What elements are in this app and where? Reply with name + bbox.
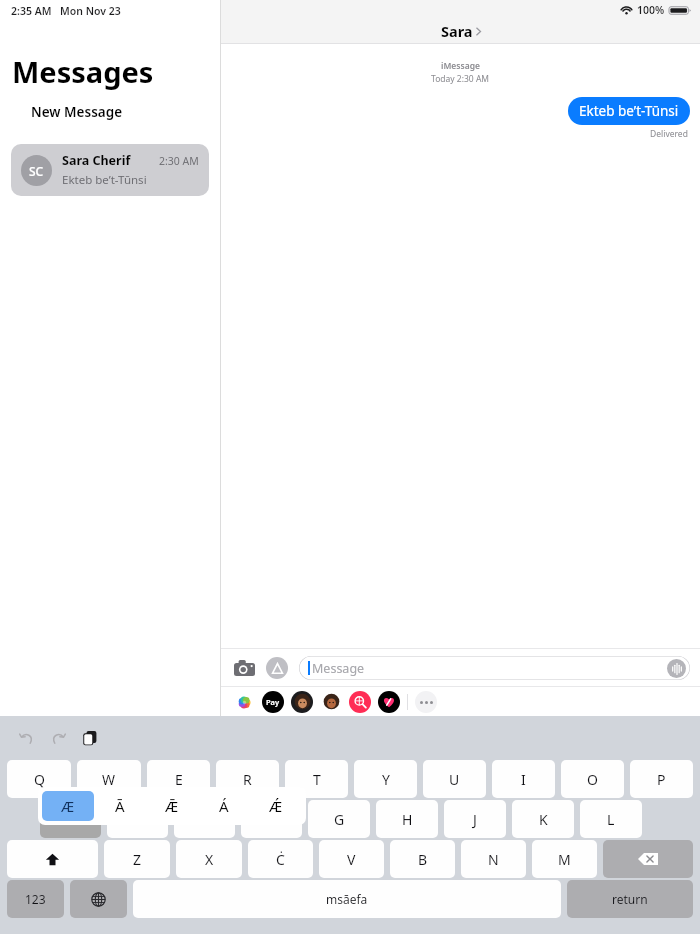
button[interactable]: More apps <box>415 691 437 713</box>
staticText: Ǣ <box>165 796 179 816</box>
staticText: Pay <box>266 697 280 707</box>
button[interactable]: Y <box>354 760 417 798</box>
button[interactable]: Ċ <box>248 840 313 878</box>
staticText: Messages <box>12 52 154 91</box>
staticText: O <box>587 770 598 789</box>
staticText: Q <box>34 770 45 789</box>
staticText: H <box>402 810 413 829</box>
staticText: V <box>347 850 356 869</box>
button[interactable]: L <box>580 800 642 838</box>
button[interactable]: Photos <box>233 691 255 713</box>
button[interactable]: Camera <box>231 655 257 681</box>
button[interactable]: F <box>241 800 302 838</box>
button[interactable]: Redo <box>46 726 70 750</box>
staticText: 2:30 AM <box>159 154 199 168</box>
button[interactable]: B <box>390 840 455 878</box>
button[interactable]: Memoji <box>291 691 313 713</box>
staticText: Y <box>382 770 390 789</box>
button[interactable]: W <box>77 760 141 798</box>
staticText: return <box>612 891 648 907</box>
button[interactable]: E <box>147 760 210 798</box>
staticText: Á <box>219 796 229 816</box>
staticText: B <box>418 850 428 869</box>
button[interactable]: G <box>308 800 370 838</box>
staticText: 100% <box>637 3 665 17</box>
staticText: G <box>334 810 345 829</box>
button[interactable]: Message <box>299 656 690 680</box>
button[interactable]: Audio message <box>667 659 686 678</box>
button[interactable]: U <box>423 760 486 798</box>
staticText: A <box>66 810 75 829</box>
staticText: Sara <box>441 21 473 41</box>
button[interactable]: Á <box>198 791 250 821</box>
button[interactable]: Ǽ <box>250 791 302 821</box>
button[interactable]: Paste <box>78 726 102 750</box>
button[interactable]: X <box>176 840 242 878</box>
staticText: K <box>539 810 548 829</box>
button[interactable]: O <box>561 760 624 798</box>
button[interactable]: Ā <box>94 791 146 821</box>
button[interactable]: A <box>40 800 101 838</box>
staticText: T <box>313 770 321 789</box>
button[interactable]: D <box>174 800 235 838</box>
button[interactable]: K <box>512 800 574 838</box>
staticText: X <box>205 850 214 869</box>
button[interactable]: Undo <box>14 726 38 750</box>
button[interactable]: Delete <box>603 840 693 878</box>
button[interactable]: P <box>630 760 693 798</box>
staticText: E <box>175 770 183 789</box>
staticText: Ǽ <box>269 796 283 816</box>
staticText: iMessage <box>441 60 480 72</box>
button[interactable]: Music <box>378 691 400 713</box>
button[interactable]: Q <box>7 760 71 798</box>
button[interactable]: H <box>376 800 438 838</box>
button[interactable]: New Message <box>29 101 125 123</box>
staticText: Æ <box>61 796 75 816</box>
staticText: R <box>243 770 252 789</box>
button[interactable]: SC <box>11 144 209 196</box>
staticText: F <box>268 810 276 829</box>
staticText: Ekteb be’t-Tūnsi <box>579 102 679 120</box>
button[interactable]: I <box>492 760 555 798</box>
staticText: L <box>607 810 615 829</box>
staticText: Ekteb be’t-Tūnsi <box>62 172 147 188</box>
button[interactable]: V <box>319 840 384 878</box>
staticText: Ā <box>115 796 125 816</box>
staticText: 123 <box>25 891 46 907</box>
button[interactable]: N <box>461 840 526 878</box>
staticText: Z <box>133 850 142 869</box>
staticText: Delivered <box>650 128 688 140</box>
staticText: P <box>657 770 666 789</box>
staticText: msāefa <box>326 891 368 907</box>
staticText: N <box>488 850 499 869</box>
button[interactable]: Apple Pay <box>262 691 284 713</box>
staticText: M <box>558 850 571 869</box>
staticText: I <box>521 770 526 789</box>
button[interactable]: Sara <box>437 20 485 42</box>
button[interactable]: Stickers <box>320 691 342 713</box>
button[interactable]: Z <box>104 840 170 878</box>
staticText: Mon Nov 23 <box>60 4 121 18</box>
button[interactable]: J <box>444 800 506 838</box>
button[interactable]: 123 <box>7 880 64 918</box>
button[interactable]: Shift <box>7 840 98 878</box>
staticText: Sara Cherif <box>62 152 131 169</box>
button[interactable]: Æ <box>42 791 94 821</box>
button[interactable]: R <box>216 760 279 798</box>
staticText: Message <box>312 660 365 677</box>
button[interactable]: App Store <box>266 657 288 679</box>
button[interactable]: S <box>107 800 168 838</box>
staticText: Ċ <box>276 850 285 869</box>
button[interactable]: Images search <box>349 691 371 713</box>
button[interactable]: M <box>532 840 597 878</box>
button[interactable]: T <box>285 760 348 798</box>
button[interactable]: msāefa <box>133 880 561 918</box>
button[interactable]: Ǣ <box>146 791 198 821</box>
staticText: 2:35 AM <box>11 4 52 18</box>
staticText: New Message <box>31 103 123 121</box>
button[interactable]: Switch keyboard <box>70 880 127 918</box>
button[interactable]: Ekteb be’t-Tūnsi <box>568 97 690 125</box>
button[interactable]: return <box>567 880 693 918</box>
